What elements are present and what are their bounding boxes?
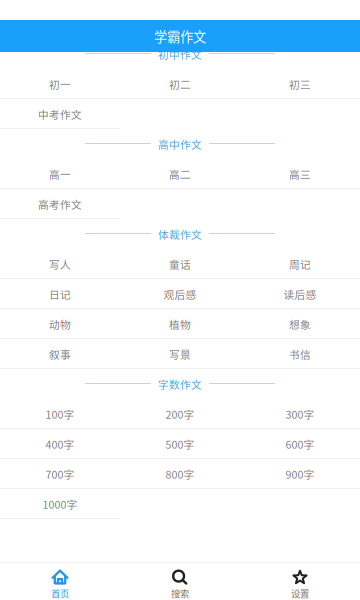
staticText: 动物 [49, 316, 71, 332]
button[interactable]: 想象 [240, 309, 360, 339]
button[interactable]: 童话 [120, 249, 240, 279]
button[interactable]: 动物 [0, 309, 120, 339]
button[interactable]: 中考作文 [0, 99, 120, 129]
staticText: 写景 [169, 346, 191, 362]
staticText: 观后感 [163, 286, 196, 302]
button[interactable]: Search [120, 562, 240, 600]
staticText: 搜索 [171, 586, 189, 600]
button[interactable]: 初二 [120, 69, 240, 99]
button[interactable]: 初一 [0, 69, 120, 99]
button[interactable]: 周记 [240, 249, 360, 279]
button[interactable]: 高考作文 [0, 189, 120, 219]
staticText: 1000字 [42, 496, 77, 512]
staticText: 植物 [169, 316, 191, 332]
staticText: 首页 [51, 586, 69, 600]
staticText: 读后感 [283, 286, 316, 302]
staticText: 高考作文 [38, 196, 82, 212]
staticText: 设置 [291, 586, 309, 600]
button[interactable]: 500字 [120, 429, 240, 459]
button[interactable]: 写景 [120, 339, 240, 369]
staticText: 500字 [165, 436, 194, 452]
staticText: 写人 [49, 256, 71, 272]
staticText: 初中作文 [158, 46, 202, 62]
staticText: 高三 [289, 166, 311, 182]
staticText: 叙事 [49, 346, 71, 362]
button[interactable]: 初三 [240, 69, 360, 99]
staticText: 童话 [169, 256, 191, 272]
staticText: 体裁作文 [158, 226, 202, 242]
staticText: 初一 [49, 76, 71, 92]
staticText: 700字 [45, 466, 74, 482]
button[interactable]: 1000字 [0, 489, 120, 519]
staticText: 日记 [49, 286, 71, 302]
staticText: 周记 [289, 256, 311, 272]
staticText: 想象 [289, 316, 311, 332]
button[interactable]: 日记 [0, 279, 120, 309]
staticText: 600字 [285, 436, 314, 452]
staticText: 书信 [289, 346, 311, 362]
staticText: 300字 [285, 406, 314, 422]
button[interactable]: Settings [240, 562, 360, 600]
button[interactable]: 700字 [0, 459, 120, 489]
staticText: 900字 [285, 466, 314, 482]
staticText: 100字 [45, 406, 74, 422]
button[interactable]: 800字 [120, 459, 240, 489]
button[interactable]: 高二 [120, 159, 240, 189]
button[interactable]: 书信 [240, 339, 360, 369]
staticText: 初二 [169, 76, 191, 92]
staticText: 高一 [49, 166, 71, 182]
button[interactable]: 200字 [120, 399, 240, 429]
button[interactable]: 叙事 [0, 339, 120, 369]
button[interactable]: 读后感 [240, 279, 360, 309]
button[interactable]: 植物 [120, 309, 240, 339]
button[interactable]: 高一 [0, 159, 120, 189]
button[interactable]: 高三 [240, 159, 360, 189]
button[interactable]: 写人 [0, 249, 120, 279]
staticText: 学霸作文 [154, 26, 206, 46]
staticText: 400字 [45, 436, 74, 452]
button[interactable]: Home [0, 562, 120, 600]
staticText: 高二 [169, 166, 191, 182]
staticText: 字数作文 [158, 376, 202, 392]
button[interactable]: 观后感 [120, 279, 240, 309]
button[interactable]: 900字 [240, 459, 360, 489]
staticText: 高中作文 [158, 136, 202, 152]
button[interactable]: 300字 [240, 399, 360, 429]
staticText: 中考作文 [38, 106, 82, 122]
staticText: 初三 [289, 76, 311, 92]
button[interactable]: 600字 [240, 429, 360, 459]
staticText: 200字 [165, 406, 194, 422]
button[interactable]: 100字 [0, 399, 120, 429]
button[interactable]: 400字 [0, 429, 120, 459]
staticText: 800字 [165, 466, 194, 482]
